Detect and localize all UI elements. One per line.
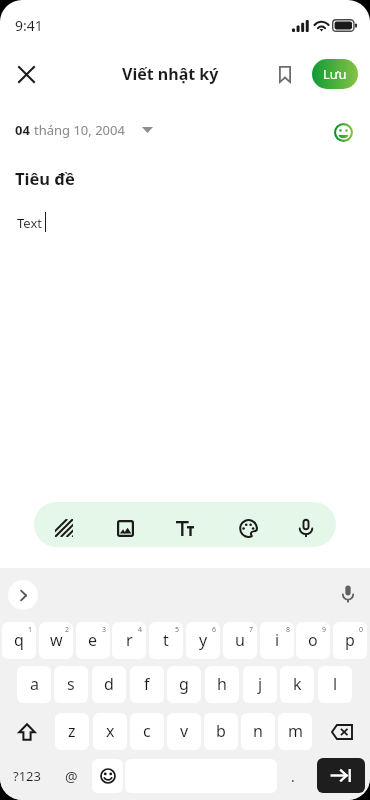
staticText: 4 xyxy=(138,625,143,635)
staticText: u xyxy=(235,629,245,651)
staticText: k xyxy=(293,673,302,695)
staticText: v xyxy=(180,720,189,742)
button[interactable]: l xyxy=(318,666,352,703)
staticText: tháng 10, 2004 xyxy=(34,121,125,139)
staticText: 1 xyxy=(28,625,33,635)
button[interactable]: Text format xyxy=(164,507,206,547)
staticText: f xyxy=(144,673,150,695)
staticText: 9:41 xyxy=(15,16,43,35)
button[interactable]: Lưu xyxy=(312,59,358,89)
button[interactable]: Backspace xyxy=(318,713,366,750)
button[interactable]: y xyxy=(186,622,220,659)
button[interactable]: m xyxy=(278,713,312,750)
staticText: s xyxy=(67,673,75,695)
staticText: 6 xyxy=(212,625,217,635)
button[interactable]: Shift xyxy=(3,713,51,750)
button[interactable]: Close xyxy=(8,56,45,93)
staticText: g xyxy=(179,673,189,695)
staticText: 2 xyxy=(65,625,70,635)
button[interactable]: k xyxy=(280,666,314,703)
staticText: x xyxy=(106,720,115,742)
staticText: q xyxy=(14,629,24,651)
button[interactable]: Voice note xyxy=(285,507,327,547)
button[interactable]: z xyxy=(55,713,89,750)
staticText: 0 xyxy=(359,625,364,635)
button[interactable]: Background pattern xyxy=(43,507,85,547)
button[interactable]: Enter xyxy=(317,758,365,793)
button[interactable]: . xyxy=(280,759,306,793)
staticText: m xyxy=(288,720,303,742)
button[interactable]: e xyxy=(76,622,110,659)
button[interactable]: c xyxy=(130,713,164,750)
staticText: ?123 xyxy=(13,767,41,785)
button[interactable]: f xyxy=(130,666,164,703)
button[interactable]: Bookmark xyxy=(268,57,302,91)
staticText: @ xyxy=(65,767,78,786)
staticText: Lưu xyxy=(323,65,347,83)
staticText: o xyxy=(308,629,318,651)
button[interactable]: d xyxy=(92,666,126,703)
button[interactable]: o xyxy=(296,622,330,659)
button[interactable]: w xyxy=(39,622,73,659)
staticText: y xyxy=(199,629,208,651)
staticText: j xyxy=(258,673,263,695)
staticText: p xyxy=(345,629,355,651)
staticText: e xyxy=(88,629,98,651)
staticText: . xyxy=(291,767,295,786)
button[interactable]: 04 xyxy=(15,118,153,142)
staticText: 5 xyxy=(175,625,180,635)
staticText: t xyxy=(163,629,169,651)
button[interactable]: n xyxy=(241,713,275,750)
staticText: w xyxy=(50,629,63,651)
staticText: Text xyxy=(17,214,42,232)
staticText: b xyxy=(216,720,226,742)
button[interactable]: s xyxy=(54,666,88,703)
staticText: Viết nhật ký xyxy=(122,63,219,85)
button[interactable]: g xyxy=(167,666,201,703)
staticText: 9 xyxy=(322,625,327,635)
button[interactable]: a xyxy=(17,666,51,703)
button[interactable]: @ xyxy=(55,759,87,793)
button[interactable]: Expand suggestions xyxy=(8,580,38,610)
button[interactable]: h xyxy=(205,666,239,703)
button[interactable]: q xyxy=(2,622,36,659)
button[interactable]: Colors xyxy=(227,507,269,547)
staticText: 7 xyxy=(249,625,254,635)
staticText: 04 xyxy=(15,121,30,139)
button[interactable]: Mood xyxy=(328,117,358,147)
staticText: l xyxy=(333,673,338,695)
button[interactable]: Emoji xyxy=(92,759,123,793)
button[interactable]: x xyxy=(93,713,127,750)
staticText: h xyxy=(217,673,227,695)
staticText: d xyxy=(104,673,114,695)
button[interactable]: u xyxy=(223,622,257,659)
button[interactable]: Voice input xyxy=(333,579,363,609)
staticText: Tiêu đề xyxy=(15,167,75,189)
staticText: a xyxy=(30,673,39,695)
staticText: n xyxy=(253,720,263,742)
staticText: z xyxy=(68,720,76,742)
button[interactable]: r xyxy=(112,622,146,659)
staticText: c xyxy=(143,720,151,742)
staticText: 3 xyxy=(102,625,107,635)
button[interactable]: j xyxy=(243,666,277,703)
staticText: 8 xyxy=(286,625,291,635)
button[interactable]: v xyxy=(167,713,201,750)
button[interactable]: i xyxy=(260,622,294,659)
button[interactable]: Insert image xyxy=(104,507,146,547)
button[interactable]: p xyxy=(333,622,367,659)
button[interactable]: ?123 xyxy=(4,759,50,793)
staticText: r xyxy=(126,629,133,651)
button[interactable]: t xyxy=(149,622,183,659)
button[interactable]: b xyxy=(204,713,238,750)
staticText: i xyxy=(275,629,280,651)
